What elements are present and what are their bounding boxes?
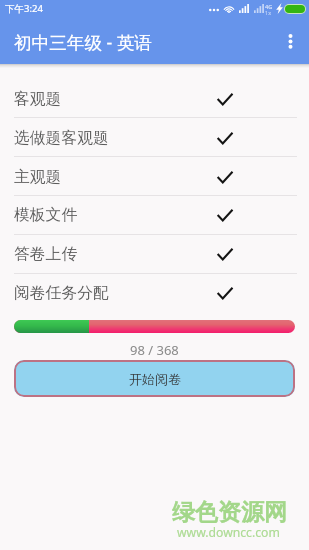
staticText: 下午3:24	[5, 2, 43, 15]
staticText: www.downcc.com	[177, 524, 280, 541]
button[interactable]: 主观题	[0, 157, 309, 196]
staticText: 模板文件	[14, 205, 78, 225]
button[interactable]: 模板文件	[0, 195, 309, 234]
staticText: 选做题客观题	[14, 128, 109, 148]
staticText: 开始阅卷	[129, 371, 181, 387]
staticText: 初中三年级 - 英语	[14, 30, 152, 54]
staticText: 98 / 368	[130, 341, 179, 359]
staticText: 客观题	[14, 89, 62, 109]
button[interactable]: More options	[268, 19, 309, 64]
staticText: 4G	[265, 3, 273, 10]
staticText: 阅卷任务分配	[14, 283, 109, 303]
button[interactable]: 答卷上传	[0, 234, 309, 273]
staticText: 绿色资源网	[172, 498, 287, 527]
button[interactable]: 开始阅卷	[14, 360, 295, 397]
staticText: 1x	[265, 9, 272, 16]
button[interactable]: 选做题客观题	[0, 118, 309, 157]
button[interactable]: 阅卷任务分配	[0, 273, 309, 312]
staticText: 主观题	[14, 167, 62, 187]
button[interactable]: 客观题	[0, 79, 309, 118]
staticText: 答卷上传	[14, 244, 78, 264]
